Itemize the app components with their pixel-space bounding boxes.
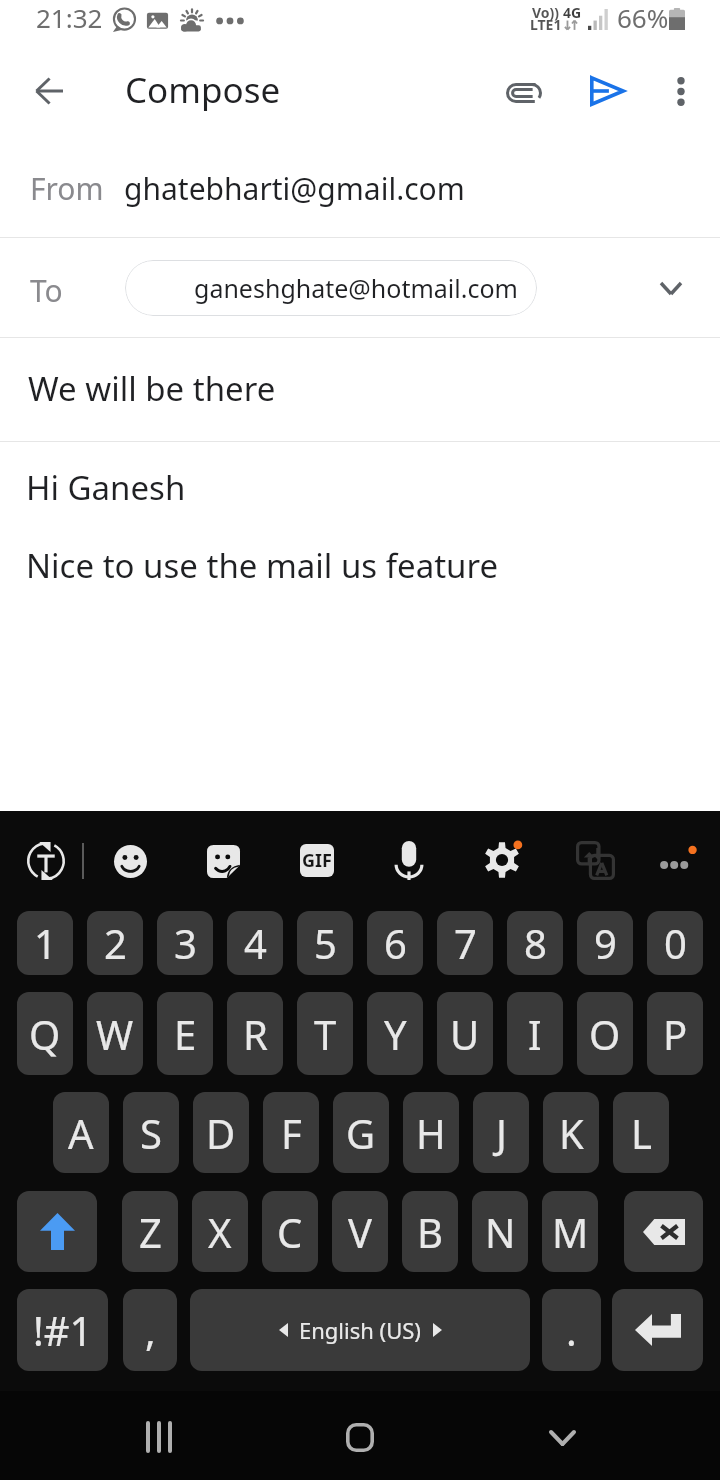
button[interactable]: Hide keyboard — [531, 1407, 593, 1469]
button[interactable]: T — [297, 992, 353, 1075]
staticText: English (US) — [299, 1315, 421, 1345]
button[interactable] — [612, 1289, 703, 1371]
staticText: F — [281, 1106, 302, 1160]
staticText: Vo)) — [532, 3, 560, 22]
button[interactable]: !#1 — [17, 1289, 108, 1371]
button[interactable]: 3 — [157, 911, 213, 975]
button[interactable]: We will be there — [0, 338, 720, 441]
button[interactable]: I — [507, 992, 563, 1075]
button[interactable]: English (US) — [190, 1289, 530, 1371]
button[interactable]: D — [193, 1092, 249, 1173]
staticText: !#1 — [33, 1303, 93, 1357]
button[interactable]: S — [123, 1092, 179, 1173]
staticText: A — [68, 1106, 94, 1160]
button[interactable] — [17, 1191, 97, 1272]
button[interactable]: Back — [20, 62, 78, 120]
button[interactable]: Y — [367, 992, 423, 1075]
staticText: M — [552, 1205, 589, 1259]
staticText: 4 — [244, 916, 267, 970]
button[interactable]: W — [87, 992, 143, 1075]
staticText: H — [416, 1106, 446, 1160]
button[interactable]: N — [472, 1191, 528, 1272]
button[interactable]: P — [647, 992, 703, 1075]
button[interactable]: L — [613, 1092, 669, 1173]
button[interactable]: V — [332, 1191, 388, 1272]
button[interactable]: Q — [17, 992, 73, 1075]
button[interactable]: 4 — [227, 911, 283, 975]
staticText: 3 — [174, 916, 197, 970]
button[interactable]: Expand recipients — [641, 258, 701, 318]
button[interactable]: H — [403, 1092, 459, 1173]
button[interactable]: A — [53, 1092, 109, 1173]
button[interactable]: F — [263, 1092, 319, 1173]
staticText: L — [631, 1106, 652, 1160]
button[interactable]: K — [543, 1092, 599, 1173]
staticText: Y — [384, 1007, 407, 1061]
button[interactable]: O — [577, 992, 633, 1075]
button[interactable]: 5 — [297, 911, 353, 975]
button[interactable]: Voice input — [381, 832, 437, 888]
button[interactable]: R — [227, 992, 283, 1075]
button[interactable]: 7 — [437, 911, 493, 975]
staticText: We will be there — [28, 366, 276, 411]
staticText: N — [485, 1205, 516, 1259]
button[interactable]: GIF — [289, 832, 345, 888]
button[interactable]: From — [0, 135, 720, 237]
staticText: 2 — [104, 916, 127, 970]
staticText: To — [30, 270, 63, 311]
button[interactable]: Z — [122, 1191, 178, 1272]
button[interactable]: More — [648, 832, 704, 888]
button[interactable]: Recents — [128, 1406, 190, 1468]
staticText: X — [208, 1205, 232, 1259]
button[interactable]: B — [402, 1191, 458, 1272]
button[interactable]: X — [192, 1191, 248, 1272]
button[interactable]: More options — [652, 62, 710, 120]
staticText: 66% — [617, 0, 669, 35]
staticText: 5 — [314, 916, 337, 970]
button[interactable] — [624, 1191, 703, 1272]
staticText: U — [450, 1007, 480, 1061]
button[interactable]: ganeshghate@hotmail.com — [125, 260, 537, 316]
staticText: R — [243, 1007, 268, 1061]
button[interactable]: . — [542, 1289, 601, 1371]
button[interactable]: Emoji — [102, 833, 158, 889]
button[interactable]: Attach file — [494, 63, 554, 123]
staticText: 0 — [664, 916, 687, 970]
button[interactable]: 1 — [17, 911, 73, 975]
button[interactable]: 8 — [507, 911, 563, 975]
staticText: E — [174, 1007, 197, 1061]
staticText: D — [206, 1106, 236, 1160]
button[interactable]: 2 — [87, 911, 143, 975]
staticText: Z — [139, 1205, 162, 1259]
staticText: ghatebharti@gmail.com — [124, 168, 465, 209]
staticText: V — [348, 1205, 372, 1259]
staticText: Hi Ganesh — [26, 465, 186, 510]
button[interactable]: U — [437, 992, 493, 1075]
staticText: 8 — [524, 916, 547, 970]
button[interactable]: Home — [329, 1406, 391, 1468]
button[interactable]: , — [123, 1289, 177, 1371]
button[interactable]: Hi Ganesh — [0, 442, 720, 487]
staticText: 9 — [594, 916, 617, 970]
button[interactable]: 0 — [647, 911, 703, 975]
staticText: From — [30, 168, 104, 209]
button[interactable]: Translate — [567, 832, 623, 888]
button[interactable]: To — [0, 238, 720, 337]
staticText: . — [566, 1303, 577, 1357]
button[interactable]: Send — [577, 61, 637, 121]
button[interactable]: E — [157, 992, 213, 1075]
button[interactable]: Keyboard settings — [474, 832, 530, 888]
staticText: ganeshghate@hotmail.com — [194, 271, 518, 305]
staticText: B — [417, 1205, 443, 1259]
button[interactable]: Text conversion — [18, 833, 74, 889]
button[interactable]: 9 — [577, 911, 633, 975]
button[interactable]: J — [473, 1092, 529, 1173]
button[interactable]: C — [262, 1191, 318, 1272]
button[interactable]: 6 — [367, 911, 423, 975]
button[interactable]: G — [333, 1092, 389, 1173]
staticText: J — [496, 1106, 507, 1160]
button[interactable]: Stickers — [195, 833, 251, 889]
staticText: 7 — [454, 916, 477, 970]
button[interactable]: M — [542, 1191, 598, 1272]
staticText: Nice to use the mail us feature — [26, 543, 499, 588]
